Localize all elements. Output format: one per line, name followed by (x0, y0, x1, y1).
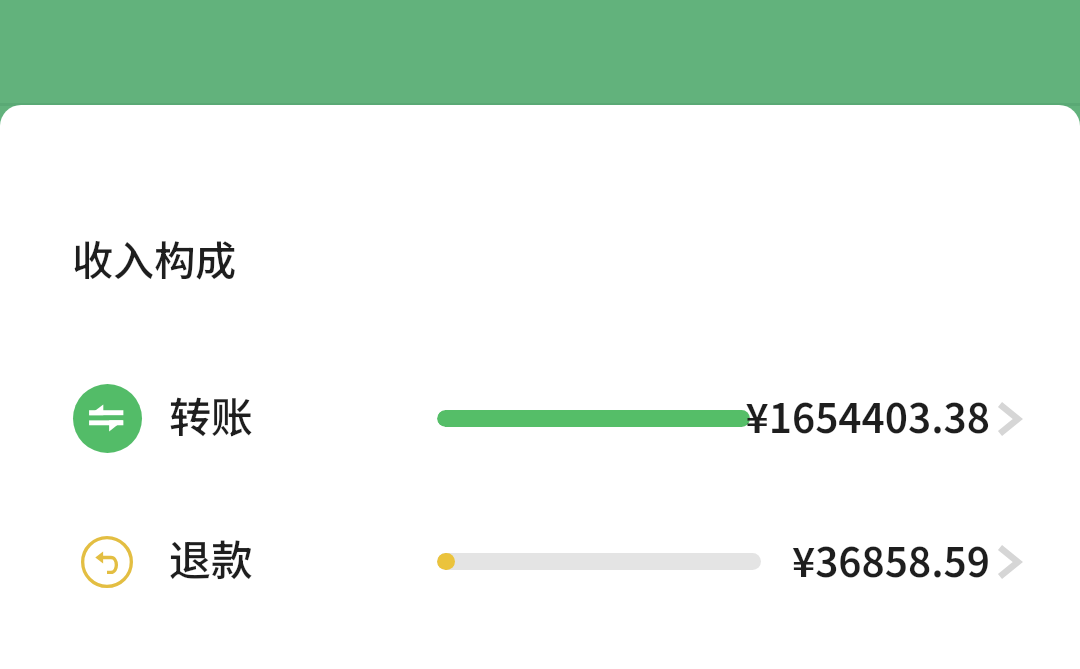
staticText: ¥36858.59 (791, 531, 990, 589)
button[interactable]: 转账 (0, 372, 1080, 468)
other: 查看详情 (997, 402, 1023, 436)
staticText: ¥1654403.38 (745, 387, 990, 445)
staticText: 收入构成 (72, 228, 236, 287)
staticText: 退款 (169, 527, 254, 588)
other: 退款 (81, 536, 133, 588)
button[interactable]: 退款 (0, 514, 1080, 610)
other: 转账 (73, 384, 142, 453)
other: 查看详情 (997, 545, 1023, 579)
staticText: 转账 (169, 384, 254, 445)
